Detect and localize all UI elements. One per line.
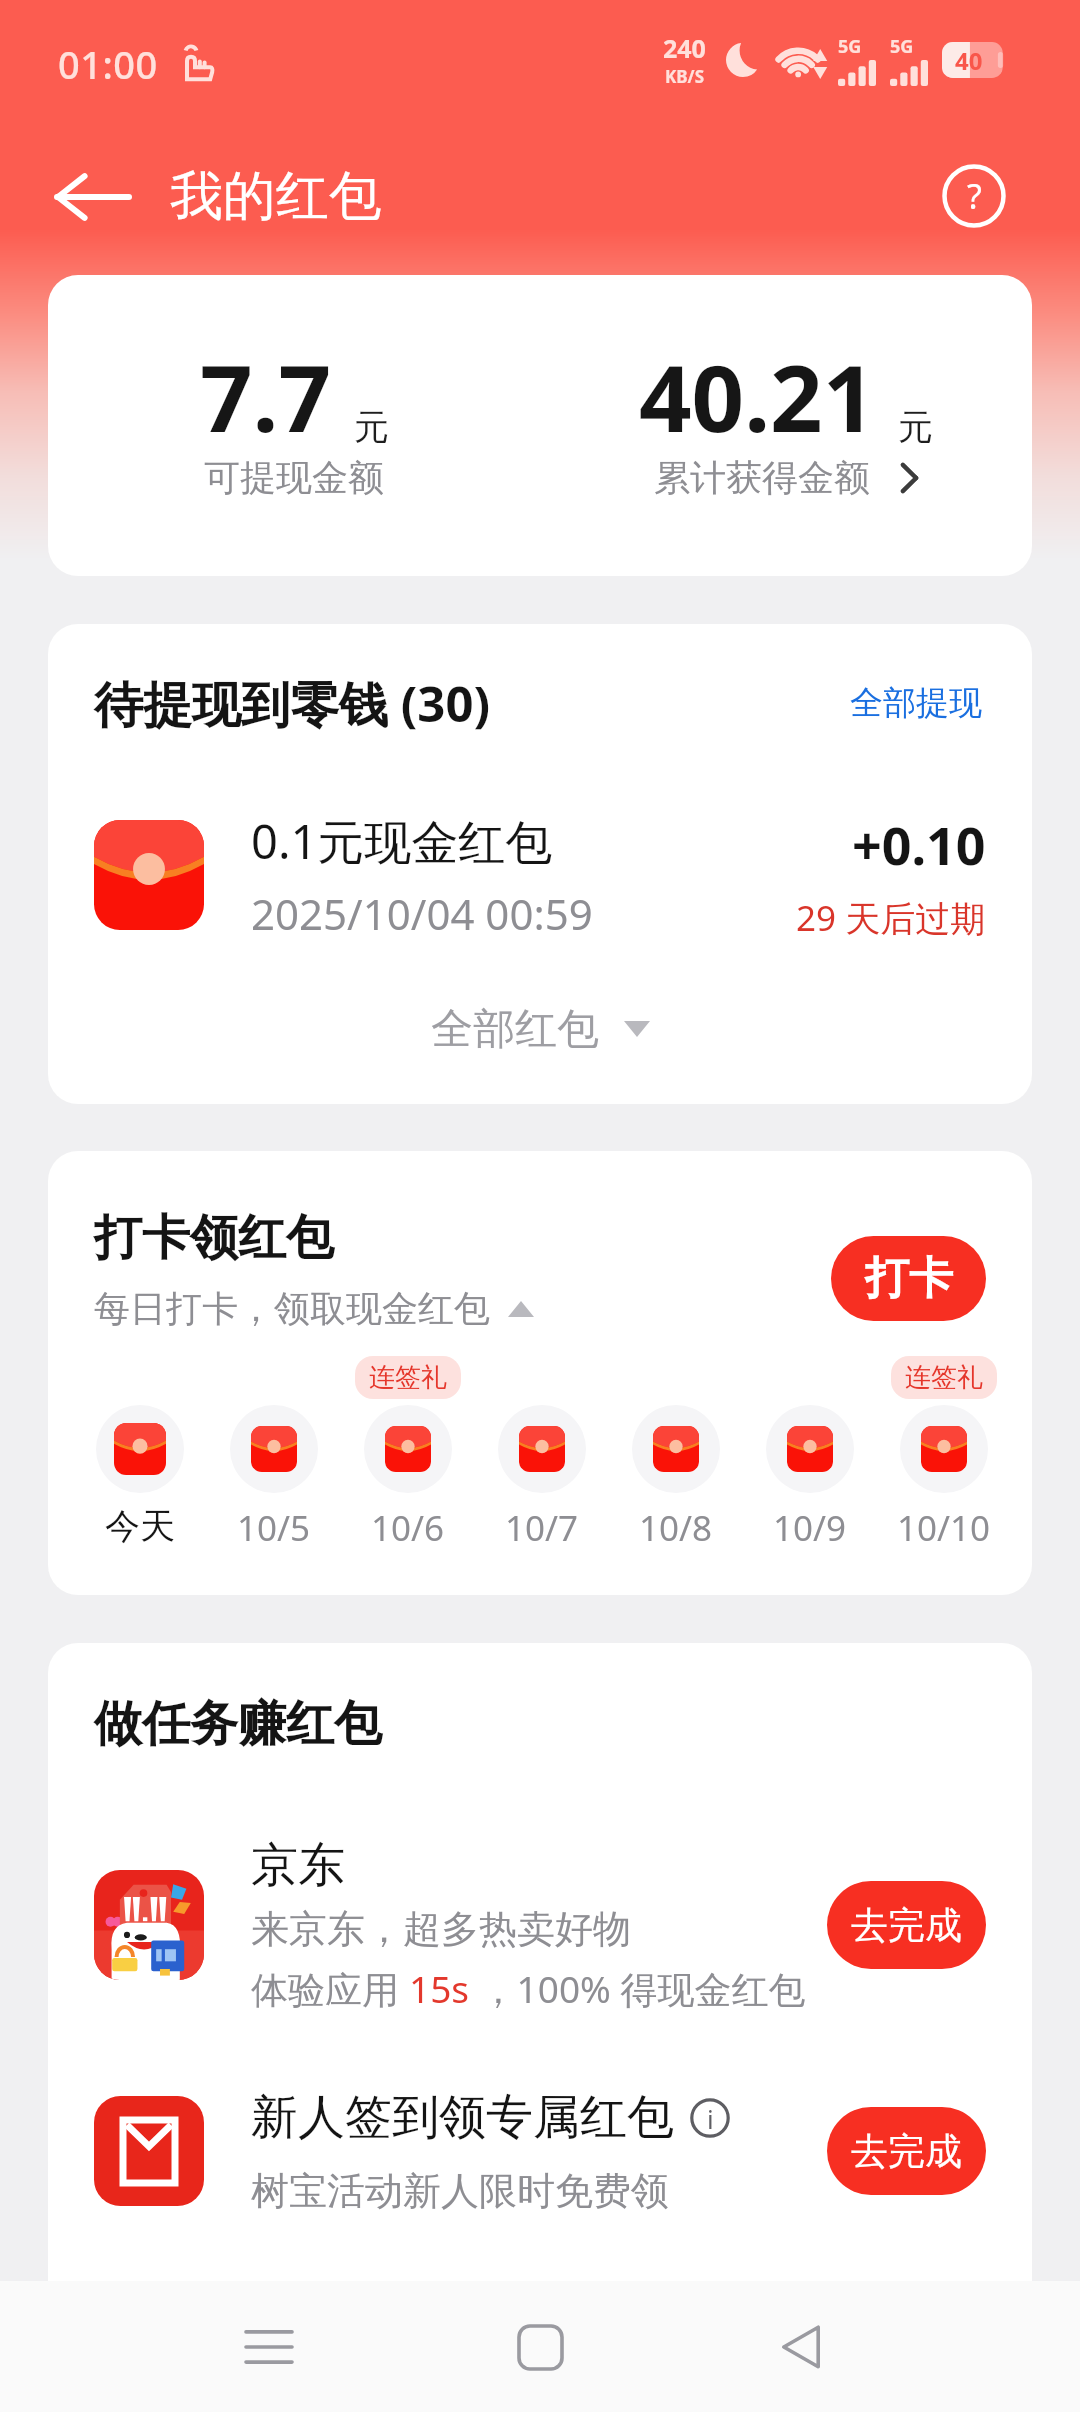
staticText: ，100% 得现金红包	[470, 1963, 806, 2014]
staticText: 10/5	[237, 1504, 311, 1552]
button[interactable]: 累计获得金额	[654, 455, 919, 500]
staticText: 29 天后过期	[796, 894, 986, 942]
staticText: 0.1元现金红包	[251, 809, 553, 873]
button[interactable]: 全部红包	[48, 984, 1032, 1074]
staticText: 元	[898, 405, 933, 449]
staticText: 新人签到领专属红包	[251, 2088, 674, 2147]
staticText: 每日打卡，领取现金红包	[94, 1286, 490, 1331]
staticText: 7.7	[200, 334, 332, 459]
staticText: 10/7	[505, 1504, 579, 1552]
button[interactable]: Help	[926, 130, 1022, 226]
staticText: 全部提现	[850, 682, 982, 724]
staticText: 全部红包	[431, 1003, 599, 1056]
button[interactable]: 去完成	[827, 1881, 986, 1969]
staticText: 15s	[409, 1963, 470, 2013]
button[interactable]: 连签礼	[877, 1355, 1010, 1552]
button[interactable]: 京东	[48, 1835, 1032, 2015]
staticText: 待提现到零钱 (30)	[94, 670, 491, 737]
button[interactable]: 10/7	[475, 1355, 609, 1552]
staticText: 5G	[890, 34, 914, 59]
staticText: 可提现金额	[204, 455, 384, 500]
staticText: 我的红包	[170, 163, 382, 230]
staticText: 做任务赚红包	[94, 1694, 382, 1754]
staticText: 10/9	[773, 1504, 847, 1552]
button[interactable]: Recents	[209, 2287, 329, 2407]
staticText: 01:00	[58, 38, 158, 90]
staticText: 来京东，超多热卖好物	[251, 1905, 631, 1953]
button[interactable]: Home	[480, 2287, 600, 2407]
staticText: i	[707, 2101, 714, 2136]
staticText: 连签礼	[905, 1361, 983, 1394]
staticText: +0.10	[852, 809, 986, 880]
staticText: 10/10	[897, 1504, 991, 1552]
button[interactable]: 10/8	[609, 1355, 743, 1552]
button[interactable]: 今天	[73, 1355, 207, 1548]
button[interactable]: Back	[37, 123, 147, 233]
button[interactable]: 0.1元现金红包	[48, 807, 1032, 943]
button[interactable]: 打卡	[831, 1236, 986, 1321]
staticText: 京东	[251, 1836, 345, 1895]
staticText: 打卡	[865, 1251, 953, 1306]
button[interactable]: 去完成	[827, 2107, 986, 2195]
staticText: 累计获得金额	[654, 455, 870, 500]
button[interactable]: 10/5	[207, 1355, 341, 1552]
staticText: ?	[967, 173, 982, 219]
staticText: 去完成	[851, 2128, 962, 2175]
staticText: 今天	[105, 1504, 175, 1548]
button[interactable]: Back	[741, 2287, 861, 2407]
staticText: 10/6	[371, 1504, 445, 1552]
staticText: 2025/10/04 00:59	[251, 885, 593, 942]
staticText: 去完成	[851, 1902, 962, 1949]
staticText: 40.21	[639, 334, 876, 459]
staticText: 40	[955, 44, 983, 77]
staticText: 打卡领红包	[94, 1208, 334, 1268]
button[interactable]: 新人签到领专属红包	[48, 2076, 1032, 2226]
button[interactable]: 全部提现	[844, 668, 988, 738]
staticText: 10/8	[639, 1504, 713, 1552]
button[interactable]: 连签礼	[341, 1355, 475, 1552]
staticText: 240	[663, 31, 706, 65]
staticText: 体验应用	[251, 1963, 409, 2014]
staticText: 连签礼	[369, 1361, 447, 1394]
staticText: KB/S	[665, 65, 705, 88]
staticText: 树宝活动新人限时免费领	[251, 2167, 669, 2215]
staticText: 5G	[838, 34, 862, 59]
staticText: 元	[354, 405, 389, 449]
button[interactable]: 10/9	[743, 1355, 877, 1552]
